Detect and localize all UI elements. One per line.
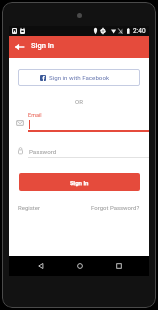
button[interactable]: Sign In (19, 173, 140, 191)
button[interactable]: Sign in with Facebook (18, 69, 140, 86)
staticText: 2:40 (133, 27, 146, 35)
staticText: Sign In (70, 179, 89, 186)
button[interactable]: Forgot Password? (91, 204, 140, 211)
button[interactable]: Back (9, 36, 29, 58)
button[interactable]: Register (18, 204, 40, 211)
button[interactable]: Home (60, 256, 99, 276)
staticText: OR (9, 98, 149, 105)
staticText: Email (28, 112, 42, 118)
staticText: Register (18, 204, 40, 211)
button[interactable]: Back (21, 256, 60, 276)
staticText: Sign in with Facebook (49, 74, 110, 81)
staticText: Sign In (31, 41, 55, 50)
button[interactable]: Recent apps (99, 256, 138, 276)
staticText: Password (29, 148, 57, 155)
staticText: Forgot Password? (91, 204, 140, 211)
